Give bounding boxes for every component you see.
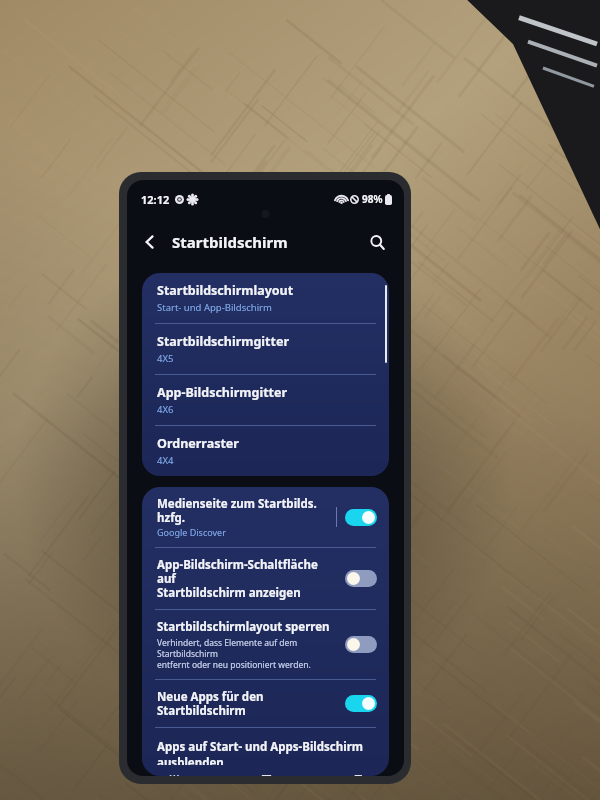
button[interactable]: Neue Apps für den Startbildschirm — [142, 680, 389, 727]
button[interactable]: Startbildschirmlayout — [142, 273, 389, 323]
button[interactable]: App-Bildschirmgitter — [142, 375, 389, 425]
staticText: Startbildschirmgitter — [157, 333, 289, 350]
staticText: 98% — [362, 192, 383, 206]
staticText: 12:12 — [141, 192, 170, 207]
button[interactable]: Apps auf Start- und Apps-Bildschirm ausb… — [142, 728, 389, 776]
button[interactable]: Off — [345, 570, 377, 587]
staticText: Startbildschirmlayout — [157, 282, 294, 299]
staticText: Google Discover — [157, 526, 226, 538]
staticText: Verhindert, dass Elemente auf dem Startb… — [157, 637, 337, 670]
staticText: Apps auf Start- und Apps-Bildschirm ausb… — [157, 739, 374, 765]
button[interactable]: On — [345, 509, 377, 526]
staticText: App-Bildschirmgitter — [157, 384, 288, 401]
button[interactable]: On — [345, 695, 377, 712]
staticText: Start- und App-Bildschirm — [157, 301, 272, 314]
staticText: Ordnerraster — [157, 435, 239, 452]
staticText: 4X6 — [157, 403, 174, 416]
staticText: 4X5 — [157, 352, 174, 365]
button[interactable]: Search — [360, 225, 394, 259]
button[interactable]: App-Bildschirm-Schaltfläche auf Startbil… — [142, 548, 389, 609]
button[interactable]: Ordnerraster — [142, 426, 389, 476]
button[interactable]: Medienseite zum Startbilds. hzfg. — [142, 487, 389, 547]
button[interactable]: Back — [133, 225, 167, 259]
staticText: 4X4 — [157, 454, 174, 467]
staticText: Startbildschirmlayout sperren — [157, 619, 330, 635]
button[interactable]: Off — [345, 636, 377, 653]
staticText: Medienseite zum Startbilds. hzfg. — [157, 496, 328, 525]
button[interactable]: Startbildschirmlayout sperren — [142, 610, 389, 679]
button[interactable]: Startbildschirmgitter — [142, 324, 389, 374]
staticText: App-Bildschirm-Schaltfläche auf Startbil… — [157, 557, 337, 600]
staticText: Neue Apps für den Startbildschirm — [157, 689, 337, 718]
staticText: Startbildschirm — [172, 232, 288, 252]
